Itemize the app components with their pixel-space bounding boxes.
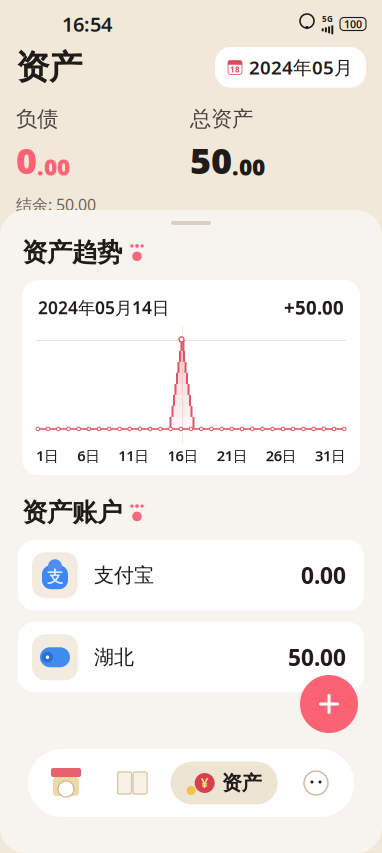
staticText: 总资产 (190, 106, 253, 132)
button[interactable]: 18 (215, 47, 366, 88)
staticText: 31日 (315, 446, 346, 465)
staticText: 16:54 (62, 11, 112, 37)
staticText: 100 (344, 17, 362, 31)
button[interactable]: 支 (18, 540, 364, 610)
button[interactable]: 首页 (38, 760, 94, 806)
button[interactable]: ¥ (171, 762, 278, 804)
staticText: 5G (322, 14, 333, 24)
staticText: 结余: 50.00 (16, 194, 96, 215)
staticText: .00 (232, 152, 265, 182)
staticText: 18 (230, 64, 240, 75)
staticText: 0 (16, 136, 37, 184)
staticText: 21日 (217, 446, 248, 465)
staticText: 2024年05月 (249, 55, 353, 80)
button[interactable]: 明细 (104, 760, 160, 806)
staticText: 资产趋势 (22, 237, 122, 268)
button[interactable]: 湖北 (18, 622, 364, 692)
staticText: 6日 (77, 446, 100, 465)
staticText: .00 (37, 152, 70, 182)
staticText: 支付宝 (94, 563, 154, 587)
staticText: 负债 (16, 106, 58, 132)
staticText: +50.00 (284, 295, 344, 320)
staticText: 50.00 (288, 642, 346, 672)
staticText: 26日 (266, 446, 297, 465)
staticText: 16日 (167, 446, 198, 465)
staticText: 湖北 (94, 645, 134, 669)
staticText: 支 (47, 567, 63, 587)
staticText: 50 (190, 136, 232, 184)
staticText: 资产账户 (22, 497, 122, 528)
button[interactable]: 我的 (288, 760, 344, 806)
staticText: ¥ (201, 774, 209, 792)
staticText: 1日 (36, 446, 59, 465)
staticText: 资产 (222, 771, 262, 795)
staticText: 0.00 (301, 560, 346, 590)
staticText: 2024年05月14日 (38, 296, 169, 319)
staticText: 资产 (16, 47, 82, 88)
staticText: 11日 (118, 446, 149, 465)
button[interactable]: 添加账户 (300, 675, 358, 733)
